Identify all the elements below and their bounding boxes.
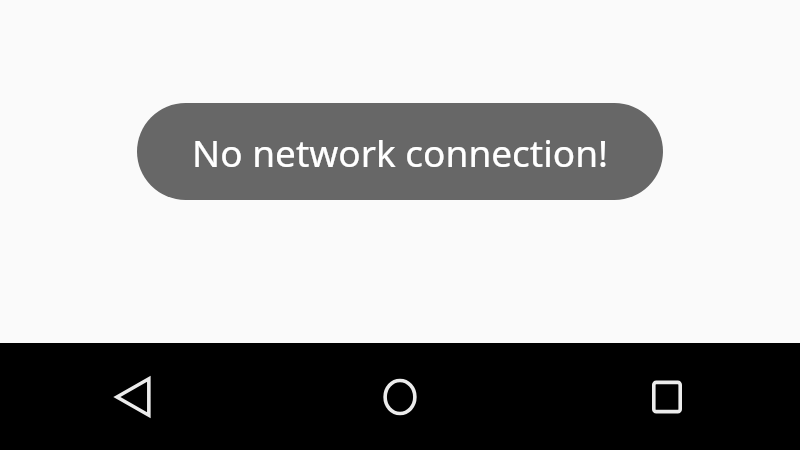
- button[interactable]: No network connection!: [137, 103, 663, 200]
- button[interactable]: Back: [0, 343, 266, 450]
- staticText: No network connection!: [192, 127, 608, 177]
- button[interactable]: Home: [266, 343, 533, 450]
- button[interactable]: Recent apps: [533, 343, 800, 450]
